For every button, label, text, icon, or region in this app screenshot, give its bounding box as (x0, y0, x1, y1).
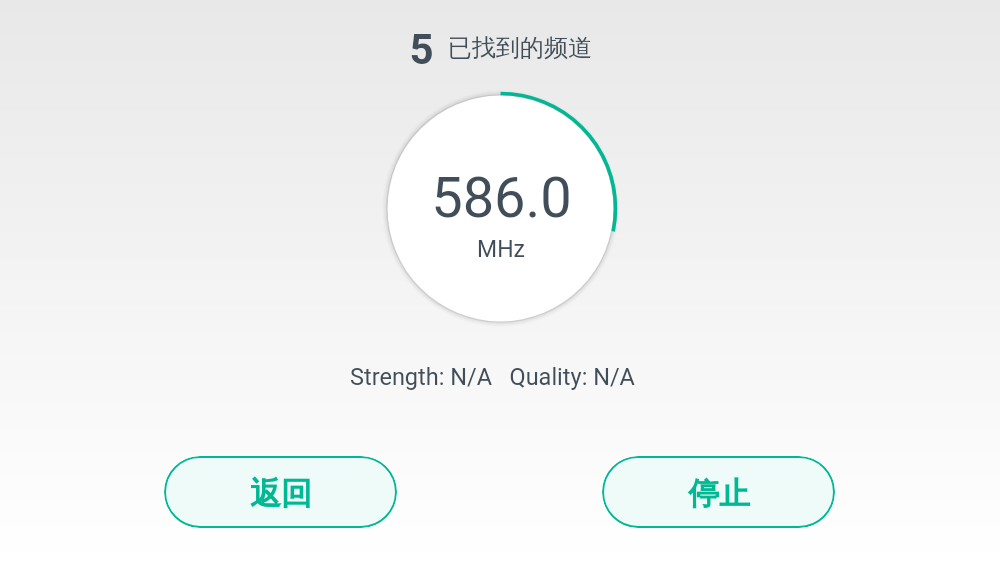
staticText: 5 (409, 25, 434, 74)
staticText: 停止 (688, 474, 750, 513)
staticText: 已找到的频道 (448, 33, 592, 63)
staticText: Strength: N/A Quality: N/A (350, 363, 635, 391)
staticText: 586.0 (431, 165, 572, 231)
staticText: MHz (477, 236, 525, 263)
staticText: 返回 (250, 474, 312, 513)
button[interactable]: 返回 (164, 456, 397, 528)
button[interactable]: 停止 (602, 456, 835, 528)
